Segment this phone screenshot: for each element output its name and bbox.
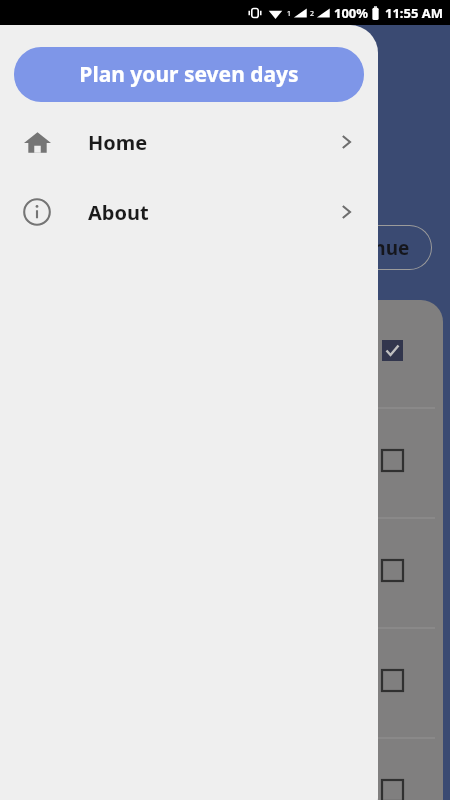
other: About [23, 198, 51, 226]
staticText: Home [88, 129, 148, 156]
staticText: 100% [334, 4, 369, 22]
other: Home [24, 129, 51, 156]
button[interactable]: Plan your seven days [14, 47, 364, 102]
staticText: 11:55 AM [385, 4, 444, 22]
staticText: Plan your seven days [79, 60, 299, 89]
staticText: 2 [310, 9, 315, 19]
staticText: About [88, 199, 149, 226]
staticText: Continue [323, 235, 410, 261]
button[interactable]: Home [0, 127, 378, 157]
button[interactable]: About [0, 197, 378, 227]
button[interactable]: Continue [300, 225, 432, 270]
staticText: 1 [287, 9, 292, 19]
